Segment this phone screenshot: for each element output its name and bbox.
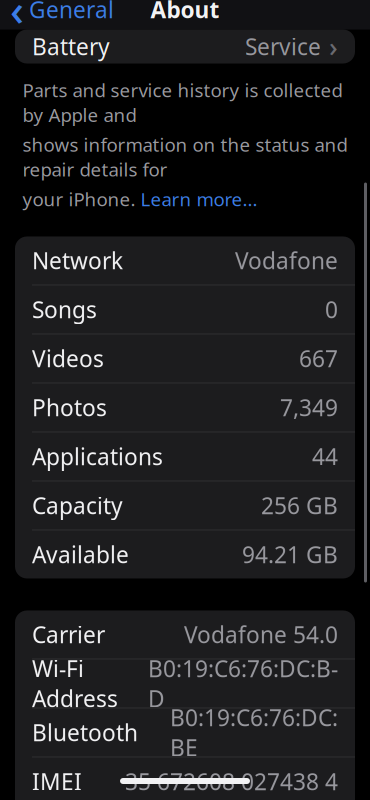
button[interactable]: Applications [15, 432, 355, 481]
button[interactable]: Network [15, 236, 355, 285]
button[interactable]: IMEI [15, 757, 355, 800]
staticText: Vodafone 54.0 [184, 619, 338, 649]
staticText: Capacity [32, 490, 123, 520]
button[interactable]: ‹ [0, 0, 122, 29]
staticText: Wi-Fi Address [32, 653, 118, 714]
staticText: 256 GB [261, 490, 338, 520]
staticText: B0:19:C6:76:DC:BE [170, 702, 338, 763]
button[interactable]: Battery [15, 29, 355, 63]
staticText: Learn more... [140, 187, 257, 211]
button[interactable]: Carrier [15, 610, 355, 659]
staticText: Available [32, 539, 129, 569]
button[interactable]: Available [15, 530, 355, 578]
staticText: 7,349 [280, 392, 338, 422]
staticText: Applications [32, 441, 163, 471]
staticText: your iPhone. [22, 187, 140, 211]
staticText: ‹ [10, 0, 24, 38]
button[interactable]: Bluetooth [15, 708, 355, 757]
staticText: shows information on the status and repa… [22, 132, 347, 182]
staticText: › [329, 29, 338, 64]
button[interactable]: Capacity [15, 481, 355, 530]
button[interactable]: Learn more... [140, 187, 257, 211]
button[interactable]: Photos [15, 383, 355, 432]
staticText: Songs [32, 294, 97, 324]
staticText: Bluetooth [32, 717, 138, 747]
button[interactable]: Songs [15, 285, 355, 334]
staticText: Battery [32, 31, 110, 62]
staticText: 44 [312, 441, 338, 471]
staticText: Network [32, 245, 123, 275]
staticText: General [29, 0, 114, 25]
staticText: IMEI [32, 766, 82, 796]
staticText: Carrier [32, 619, 105, 649]
button[interactable]: Videos [15, 334, 355, 383]
staticText: Service [245, 31, 321, 62]
staticText: 0 [325, 294, 338, 324]
staticText: About [150, 0, 219, 25]
staticText: B0:19:C6:76:DC:BD [148, 653, 338, 714]
staticText: 667 [299, 343, 338, 373]
staticText: 94.21 GB [242, 539, 338, 569]
button[interactable]: Wi-Fi Address [15, 659, 355, 708]
staticText: 35 672608 027438 4 [125, 766, 338, 796]
staticText: Videos [32, 343, 104, 373]
staticText: Vodafone [235, 245, 338, 275]
staticText: Photos [32, 392, 107, 422]
staticText: Parts and service history is collected b… [22, 77, 342, 127]
